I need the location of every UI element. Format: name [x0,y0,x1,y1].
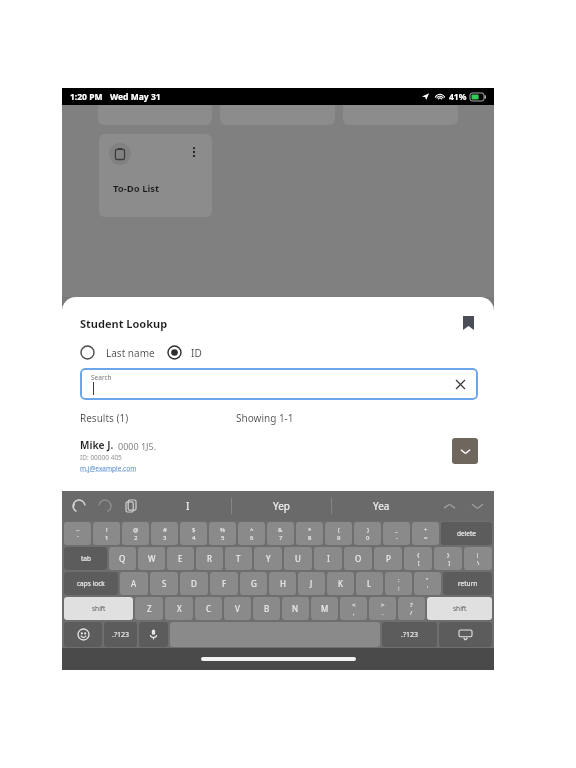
button[interactable]: Bookmark [458,313,478,333]
button[interactable]: Next [468,497,486,515]
button[interactable]: C [195,597,222,620]
staticText: G [251,578,257,589]
staticText: R [207,553,212,564]
staticText: tab [81,554,91,563]
button[interactable]: O [344,547,372,570]
staticText: - [396,534,398,542]
button[interactable]: shift [64,597,133,620]
button[interactable]: T [225,547,252,570]
button[interactable] [80,345,97,360]
staticText: 41% [449,91,467,103]
button[interactable]: return [443,572,492,595]
button[interactable]: S [150,572,178,595]
staticText: m.j@example.com [80,464,137,473]
button[interactable]: { [404,547,432,570]
button[interactable]: caps lock [64,572,118,595]
staticText: = [424,534,428,542]
button[interactable]: | [464,547,492,570]
button[interactable]: tab [64,547,107,570]
button[interactable]: Undo [70,497,88,515]
button[interactable]: ! [93,522,120,545]
button[interactable]: : [385,572,412,595]
button[interactable]: J [298,572,325,595]
staticText: * [308,526,312,534]
button[interactable]: Y [254,547,282,570]
button[interactable]: ~ [64,522,91,545]
button[interactable]: E [167,547,194,570]
staticText: J [310,578,313,589]
staticText: S [162,578,167,589]
button[interactable]: More options [186,144,202,160]
button[interactable]: ID [191,346,202,360]
button[interactable]: .?123 [104,622,137,647]
button[interactable]: Redo [96,497,114,515]
staticText: 3 [163,534,167,542]
button[interactable]: Last name [106,346,155,360]
button[interactable]: Z [135,597,163,620]
button[interactable]: A [120,572,148,595]
button[interactable]: " [414,572,441,595]
button[interactable]: More options [99,134,212,217]
button[interactable]: I [186,499,190,513]
button[interactable]: W [138,547,165,570]
button[interactable]: Hide keyboard [439,622,492,647]
button[interactable]: H [269,572,296,595]
button[interactable]: P [374,547,402,570]
staticText: 8 [308,534,312,542]
button[interactable]: & [267,522,294,545]
button[interactable]: $ [180,522,207,545]
button[interactable]: K [327,572,354,595]
button[interactable] [167,345,182,360]
button[interactable]: ? [398,597,425,620]
staticText: K [338,578,343,589]
button[interactable]: F [210,572,238,595]
button[interactable]: Q [109,547,136,570]
button[interactable] [64,622,102,647]
button[interactable]: L [356,572,383,595]
button[interactable]: Yea [373,499,390,513]
button[interactable]: N [282,597,309,620]
button[interactable]: Paste [122,497,140,515]
button[interactable]: Search [80,368,478,400]
button[interactable]: ) [354,522,381,545]
button[interactable]: Expand [452,438,478,464]
staticText: Student Lookup [80,316,168,331]
button[interactable]: I [314,547,342,570]
button[interactable]: shift [427,597,492,620]
button[interactable]: Previous [440,497,458,515]
button[interactable]: % [209,522,236,545]
button[interactable]: Yep [273,499,290,513]
button[interactable]: R [196,547,223,570]
button[interactable]: G [240,572,267,595]
staticText: $ [192,526,196,534]
button[interactable]: < [340,597,367,620]
staticText: .?123 [401,630,418,640]
button[interactable]: _ [383,522,410,545]
staticText: delete [457,529,477,538]
staticText: 9 [337,534,341,542]
staticText: 7 [279,534,283,542]
button[interactable]: V [224,597,251,620]
button[interactable]: + [412,522,439,545]
button[interactable]: M [311,597,338,620]
button[interactable]: U [284,547,312,570]
staticText: { [417,551,420,559]
button[interactable]: Mike J. [80,438,478,473]
button[interactable]: > [369,597,396,620]
button[interactable]: * [296,522,323,545]
button[interactable]: delete [441,522,492,545]
button[interactable]: } [434,547,462,570]
button[interactable]: ^ [238,522,265,545]
button[interactable]: @ [122,522,149,545]
button[interactable]: X [165,597,193,620]
button[interactable]: B [253,597,280,620]
staticText: : [398,576,400,584]
button[interactable]: D [180,572,208,595]
button[interactable]: .?123 [382,622,437,647]
button[interactable]: Clear [452,376,468,392]
button[interactable]: Voice input [139,622,168,647]
staticText: " [426,576,429,584]
button[interactable]: # [151,522,178,545]
button[interactable]: ( [325,522,352,545]
